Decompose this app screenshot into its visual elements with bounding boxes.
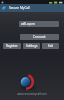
staticText: www.securemycall.com	[17, 92, 47, 96]
button[interactable]: wifi-open	[19, 21, 59, 27]
staticText: Secure MyCall	[9, 6, 30, 10]
other: App logo	[2, 6, 7, 11]
button[interactable]: Exit	[42, 43, 59, 49]
other: Secure MyCall logo	[18, 76, 38, 90]
button[interactable]: Connect	[20, 34, 59, 40]
staticText: Register	[6, 44, 18, 48]
button[interactable]: Register	[3, 43, 21, 49]
button[interactable]: Settings	[23, 43, 40, 49]
staticText: Connect	[33, 35, 46, 39]
button[interactable]: App logo	[0, 4, 64, 12]
staticText: wifi-open	[21, 22, 35, 26]
staticText: Settings	[26, 44, 38, 48]
staticText: Exit	[48, 44, 54, 48]
